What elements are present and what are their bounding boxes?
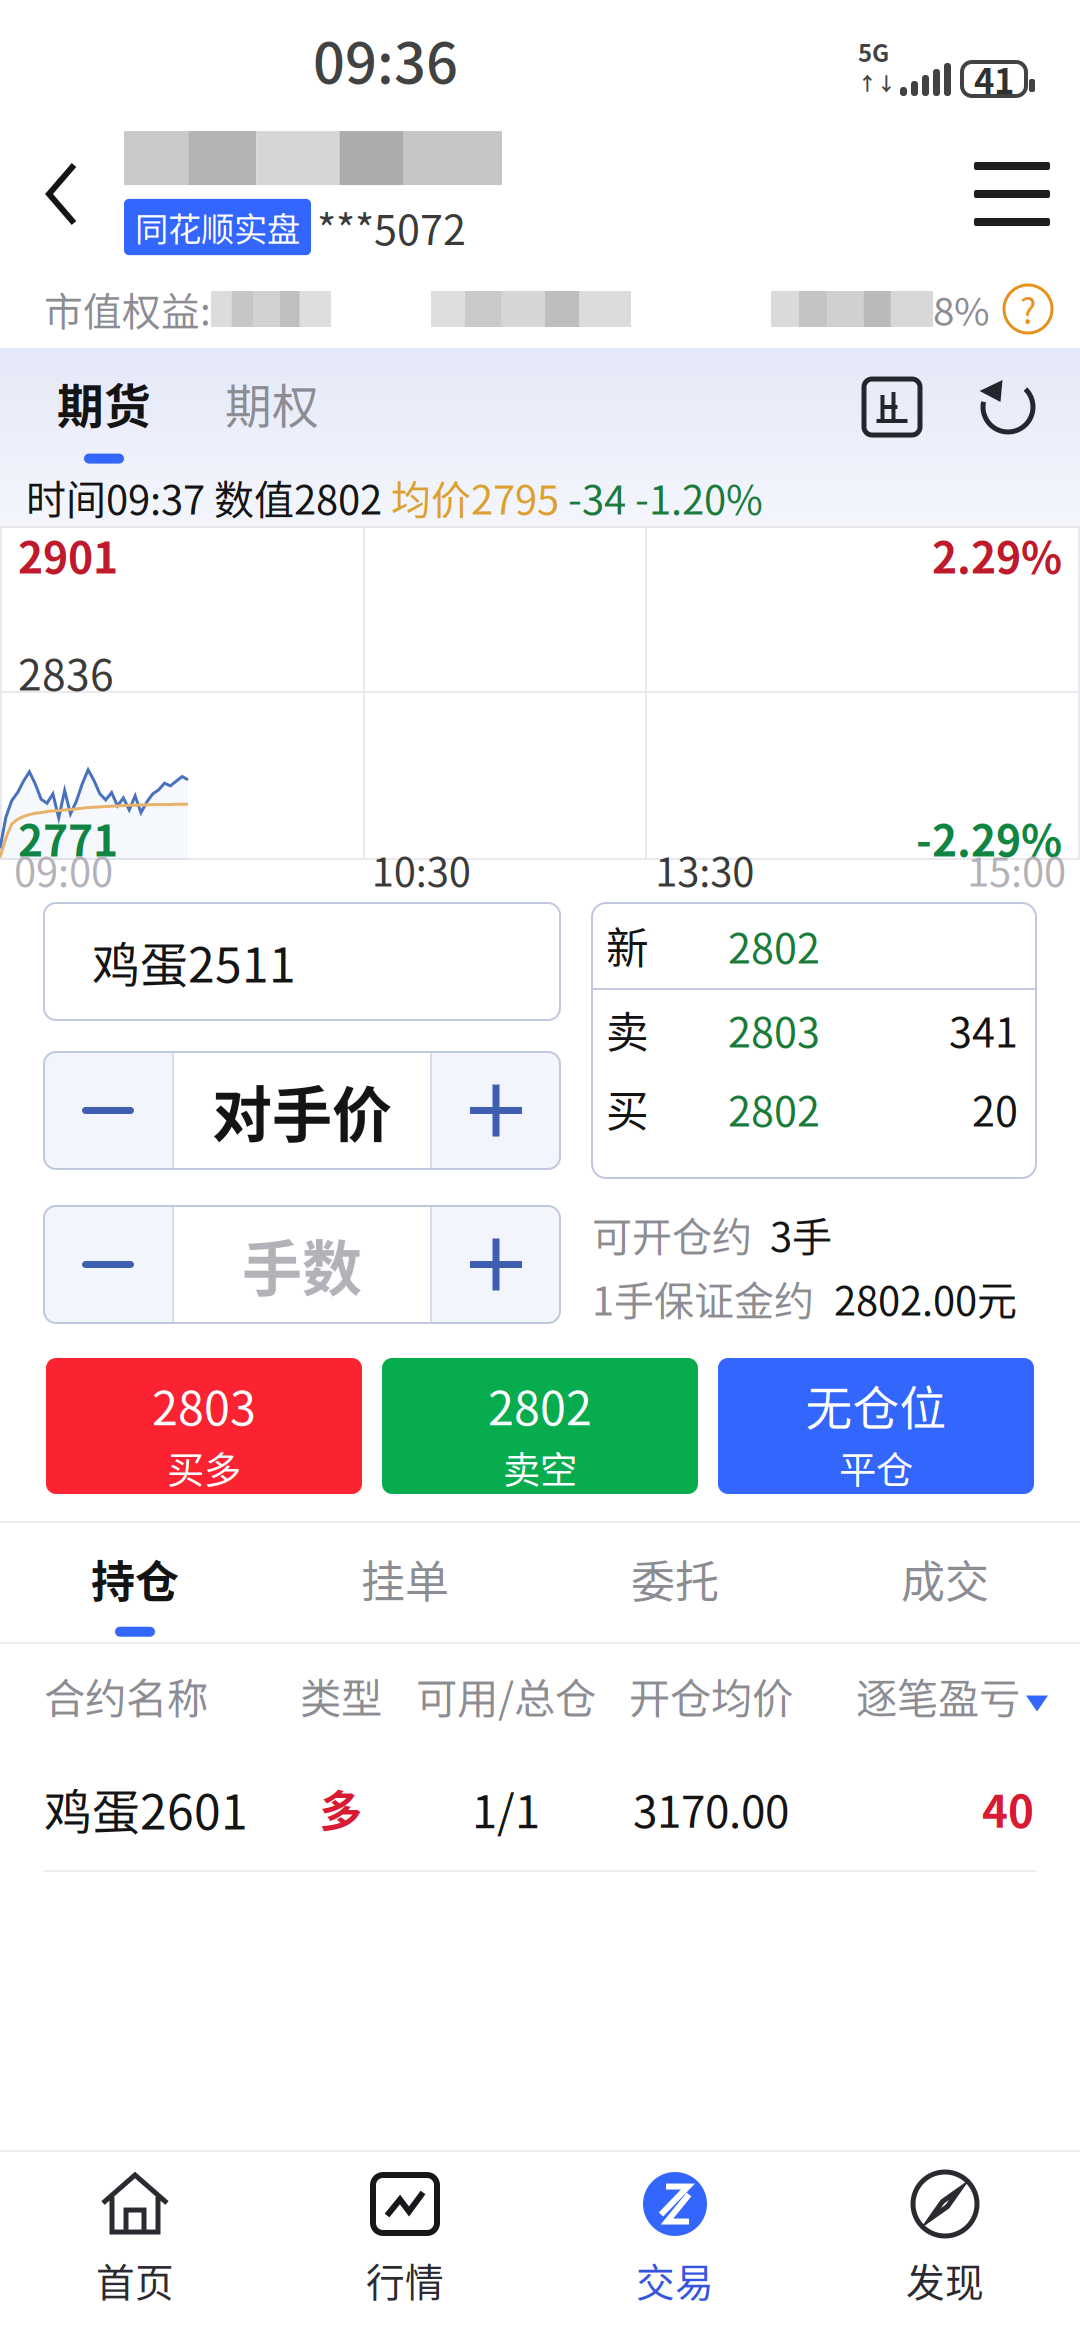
staticText: 市值权益: <box>44 281 211 337</box>
staticText: 合约名称 <box>44 1666 208 1725</box>
staticText: 可用/总仓 <box>416 1666 596 1725</box>
button[interactable]: 交易 <box>540 2152 810 2340</box>
staticText: 鸡蛋2601 <box>44 1774 248 1843</box>
staticText: 15:00 <box>967 840 1066 898</box>
staticText: 时间09:37 数值2802 <box>26 468 391 526</box>
staticText: ***5072 <box>317 197 466 257</box>
staticText: 8% <box>933 281 990 337</box>
staticText: 2803 <box>152 1371 256 1439</box>
staticText: 行情 <box>366 2252 444 2308</box>
staticText: 2901 <box>18 524 118 586</box>
staticText: 2803 <box>728 1000 820 1059</box>
staticText: ↑↓ <box>858 69 896 96</box>
staticText: 2802.00元 <box>834 1269 1017 1327</box>
button[interactable]: 条件单 <box>844 348 940 466</box>
staticText: 10:30 <box>372 840 471 898</box>
staticText: 1手保证金约 <box>592 1269 814 1327</box>
staticText: 对手价 <box>212 1067 392 1154</box>
staticText: 首页 <box>96 2252 174 2308</box>
staticText: 09:00 <box>14 840 113 898</box>
button[interactable]: 首页 <box>0 2152 270 2340</box>
button[interactable]: 期货 <box>20 348 188 466</box>
staticText: 多 <box>319 1778 362 1839</box>
staticText: 同花顺实盘 <box>135 203 300 251</box>
staticText: 均价2795 <box>391 468 559 526</box>
staticText: 3手 <box>770 1205 832 1263</box>
staticText: 委托 <box>631 1547 719 1611</box>
staticText: 2802 <box>488 1371 592 1439</box>
staticText: 持仓 <box>91 1547 179 1611</box>
staticText: 41 <box>974 54 1014 104</box>
button[interactable]: 减少 <box>44 1052 172 1169</box>
staticText: 3170.00 <box>633 1777 789 1840</box>
button[interactable]: 行情 <box>270 2152 540 2340</box>
staticText: 2802 <box>728 1079 820 1138</box>
staticText: 期货 <box>57 369 151 437</box>
button[interactable]: 2803 <box>46 1358 362 1494</box>
staticText: 5G <box>858 34 889 69</box>
button[interactable]: 委托 <box>540 1523 810 1642</box>
button[interactable]: 发现 <box>810 2152 1080 2340</box>
staticText: 2802 <box>728 916 820 975</box>
staticText: 341 <box>949 1000 1018 1059</box>
staticText: 可开仓约 <box>592 1205 752 1263</box>
button[interactable]: 增加 <box>432 1206 560 1323</box>
button[interactable]: 2802 <box>382 1358 698 1494</box>
button[interactable]: 持仓 <box>0 1523 270 1642</box>
staticText: 卖 <box>606 999 649 1060</box>
staticText: 鸡蛋2511 <box>92 927 296 996</box>
button[interactable]: 刷新 <box>960 348 1056 466</box>
staticText: -2.29% <box>916 807 1062 869</box>
staticText: 2771 <box>18 807 118 869</box>
staticText: 类型 <box>300 1666 382 1725</box>
staticText: 新 <box>606 915 649 976</box>
staticText: 发现 <box>906 2252 984 2308</box>
button[interactable]: 减少 <box>44 1206 172 1323</box>
staticText: 手数 <box>242 1221 362 1308</box>
staticText: 2.29% <box>932 524 1062 586</box>
button[interactable]: 无仓位 <box>718 1358 1034 1494</box>
staticText: 逐笔盈亏 <box>856 1666 1020 1725</box>
staticText: 买 <box>606 1078 649 1139</box>
staticText: 2836 <box>18 641 114 703</box>
button[interactable]: 成交 <box>810 1523 1080 1642</box>
button[interactable]: 期权 <box>188 348 356 466</box>
staticText: 交易 <box>636 2252 714 2308</box>
button[interactable]: 菜单 <box>944 118 1080 270</box>
staticText: 买多 <box>167 1441 241 1495</box>
staticText: 20 <box>972 1079 1018 1138</box>
staticText: 40 <box>982 1777 1034 1840</box>
staticText: 期权 <box>225 369 319 437</box>
staticText: ? <box>1020 284 1036 334</box>
staticText: 13:30 <box>655 840 754 898</box>
staticText: 开仓均价 <box>629 1666 793 1725</box>
staticText: 平仓 <box>839 1441 913 1495</box>
staticText: 成交 <box>901 1547 989 1611</box>
staticText: 无仓位 <box>805 1371 946 1439</box>
staticText: -34 -1.20% <box>559 468 763 526</box>
staticText: 卖空 <box>503 1441 577 1495</box>
staticText: 1/1 <box>472 1776 540 1841</box>
button[interactable]: 挂单 <box>270 1523 540 1642</box>
button[interactable]: 增加 <box>432 1052 560 1169</box>
staticText: 09:36 <box>313 18 458 100</box>
staticText: 挂单 <box>361 1547 449 1611</box>
button[interactable]: 返回 <box>0 118 124 270</box>
